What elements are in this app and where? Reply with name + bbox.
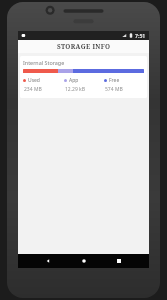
staticText: App — [69, 77, 79, 84]
staticText: Internal Storage — [23, 59, 65, 66]
button[interactable]: Recents — [113, 255, 125, 267]
staticText: 12.29 kB — [65, 86, 86, 93]
button[interactable]: App — [64, 77, 104, 93]
staticText: 7:51 — [135, 32, 146, 39]
staticText: Free — [109, 77, 120, 84]
button[interactable]: Home — [78, 255, 90, 267]
staticText: 574 MB — [105, 86, 123, 93]
staticText: 234 MB — [24, 86, 42, 93]
staticText: STORAGE INFO — [57, 42, 111, 51]
button[interactable]: Used — [23, 77, 64, 93]
button[interactable]: Internal Storage — [20, 56, 147, 98]
staticText: Used — [28, 77, 40, 84]
button[interactable]: Back — [42, 255, 54, 267]
button[interactable]: Free — [104, 77, 144, 93]
